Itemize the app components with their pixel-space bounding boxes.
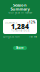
staticText: Longest run (3, 35, 20, 38)
staticText: Summary (10, 6, 29, 12)
staticText: DISTANCE (5, 21, 17, 24)
staticText: Your year in review (8, 11, 32, 14)
staticText: 1,284 (11, 22, 29, 31)
staticText: Personal best (10, 29, 29, 32)
staticText: Season (13, 2, 27, 8)
button[interactable]: Share (13, 46, 27, 50)
staticText: Share (16, 46, 24, 50)
staticText: 18 mi (29, 35, 37, 38)
staticText: +12% (27, 21, 35, 24)
